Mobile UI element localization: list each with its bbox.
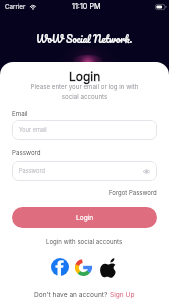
staticText: Carrier: [5, 3, 26, 11]
staticText: Password: [12, 149, 41, 157]
staticText: 11:10 PM: [72, 2, 101, 11]
button[interactable]: Sign in with Google: [75, 259, 92, 276]
staticText: Login with social accounts: [46, 238, 123, 245]
staticText: Login: [69, 69, 101, 84]
button[interactable]: Password: [12, 161, 157, 181]
button[interactable]: Sign in with Apple: [99, 258, 119, 278]
staticText: Your email: [19, 127, 47, 134]
staticText: Password: [19, 168, 45, 175]
button[interactable]: Forgot Password: [109, 189, 157, 196]
button[interactable]: Sign in with Facebook: [51, 258, 69, 276]
staticText: Forgot Password: [109, 189, 157, 196]
staticText: Don't have an account?: [34, 291, 110, 299]
staticText: WoW Social Network.: [36, 31, 133, 48]
staticText: Email: [12, 110, 28, 118]
button[interactable]: Sign Up: [110, 291, 135, 299]
staticText: Login: [76, 214, 94, 222]
staticText: Sign Up: [110, 291, 135, 299]
button[interactable]: Your email: [12, 120, 157, 140]
staticText: Please enter your email or log in with s…: [0, 83, 169, 100]
button[interactable]: Login: [12, 207, 157, 228]
